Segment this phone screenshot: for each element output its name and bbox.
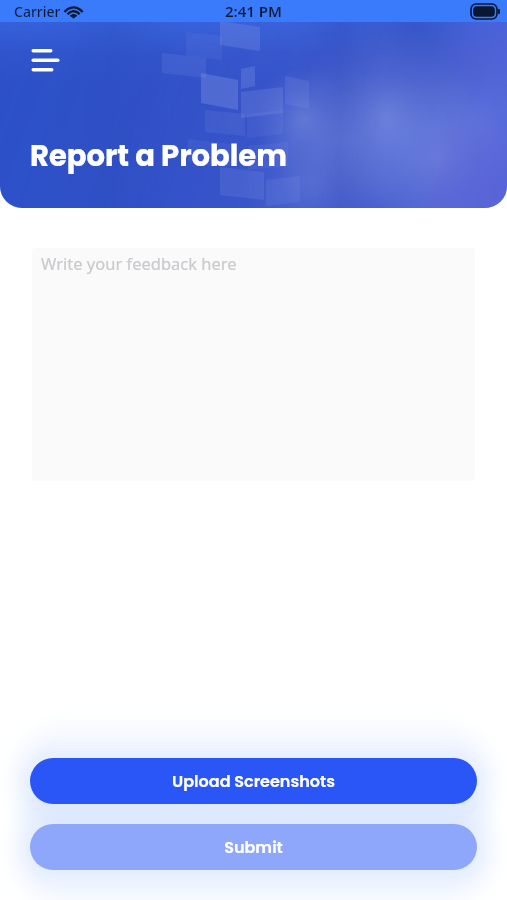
staticText: Submit [224,836,283,858]
staticText: 2:41 PM [225,1,282,21]
staticText: Carrier [14,2,61,21]
button[interactable]: Write your feedback here [32,248,475,481]
staticText: Upload Screenshots [172,770,335,792]
staticText: Report a Problem [30,136,287,177]
button[interactable]: Upload Screenshots [30,758,477,804]
staticText: Write your feedback here [41,252,237,274]
button[interactable]: Menu [26,42,64,74]
button[interactable]: Submit [30,824,477,870]
